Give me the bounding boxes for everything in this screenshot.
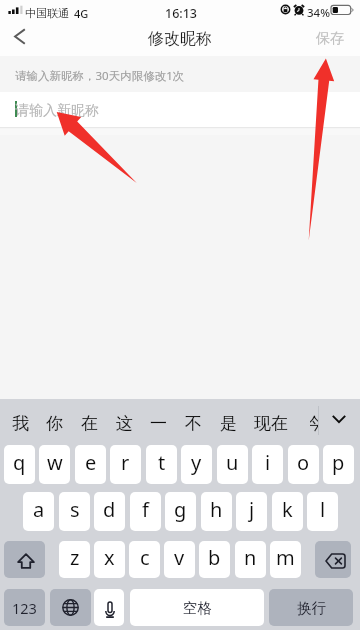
staticText: k	[282, 496, 293, 523]
staticText: 在	[81, 413, 98, 434]
button[interactable]: 换行	[269, 589, 353, 626]
staticText: t	[158, 449, 166, 476]
staticText: 是	[220, 413, 237, 434]
button[interactable]: s	[59, 492, 90, 531]
button[interactable]: 在	[81, 408, 99, 436]
staticText: u	[226, 449, 239, 476]
button[interactable]: 我	[12, 408, 30, 436]
staticText: r	[121, 449, 130, 476]
button[interactable]: h	[201, 492, 232, 531]
staticText: 这	[116, 413, 133, 434]
button[interactable]: 现在	[254, 408, 290, 436]
staticText: a	[33, 496, 45, 523]
staticText: z	[70, 544, 80, 571]
staticText: b	[208, 544, 221, 571]
button[interactable]: 这	[116, 408, 134, 436]
button[interactable]: x	[94, 541, 125, 578]
button[interactable]: a	[23, 492, 54, 531]
staticText: 一	[150, 413, 167, 434]
button[interactable]: t	[146, 445, 177, 484]
button[interactable]: p	[323, 445, 354, 484]
staticText: g	[174, 496, 187, 523]
button[interactable]: q	[4, 445, 35, 484]
staticText: i	[265, 449, 271, 476]
staticText: 今	[310, 413, 314, 434]
staticText: l	[320, 496, 326, 523]
staticText: 中国联通	[25, 6, 69, 20]
button[interactable]: Back	[2, 24, 38, 56]
button[interactable]: u	[217, 445, 248, 484]
button[interactable]: c	[129, 541, 160, 578]
button[interactable]: Shift	[4, 541, 45, 578]
staticText: h	[210, 496, 223, 523]
staticText: 16:13	[165, 5, 198, 22]
button[interactable]: r	[110, 445, 141, 484]
staticText: 修改昵称	[148, 29, 212, 49]
staticText: y	[191, 449, 202, 476]
button[interactable]: 请输入新昵称	[0, 92, 360, 128]
button[interactable]: Voice input	[94, 589, 124, 626]
button[interactable]: e	[75, 445, 106, 484]
staticText: e	[85, 449, 97, 476]
staticText: x	[104, 544, 115, 571]
button[interactable]: o	[288, 445, 319, 484]
button[interactable]: f	[130, 492, 161, 531]
staticText: n	[244, 544, 257, 571]
staticText: 请输入新昵称，30天内限修改1次	[15, 68, 185, 84]
staticText: 请输入新昵称	[15, 102, 99, 120]
button[interactable]: 是	[220, 408, 238, 436]
staticText: o	[297, 449, 310, 476]
button[interactable]: z	[59, 541, 90, 578]
staticText: c	[140, 544, 150, 571]
button[interactable]: 你	[46, 408, 64, 436]
staticText: 换行	[297, 599, 326, 617]
button[interactable]: 保存	[316, 23, 344, 55]
button[interactable]: j	[236, 492, 267, 531]
button[interactable]: 不	[185, 408, 203, 436]
button[interactable]: Switch input language	[50, 589, 91, 626]
button[interactable]: w	[39, 445, 70, 484]
staticText: m	[276, 544, 295, 571]
button[interactable]: 空格	[130, 589, 264, 626]
staticText: 保存	[316, 30, 344, 48]
button[interactable]: Hide keyboard	[324, 399, 354, 439]
button[interactable]: y	[181, 445, 212, 484]
staticText: f	[142, 496, 149, 523]
staticText: 现在	[254, 413, 288, 434]
button[interactable]: v	[164, 541, 195, 578]
staticText: 你	[46, 413, 63, 434]
staticText: v	[174, 544, 185, 571]
button[interactable]: d	[94, 492, 125, 531]
staticText: j	[249, 496, 255, 523]
staticText: 我	[12, 413, 29, 434]
staticText: w	[47, 449, 63, 476]
staticText: d	[103, 496, 116, 523]
button[interactable]: n	[235, 541, 266, 578]
button[interactable]: m	[270, 541, 301, 578]
button[interactable]: l	[307, 492, 338, 531]
staticText: 123	[12, 598, 37, 618]
staticText: p	[332, 449, 345, 476]
staticText: 34%	[307, 5, 330, 21]
staticText: 空格	[183, 599, 212, 617]
button[interactable]: g	[165, 492, 196, 531]
staticText: s	[70, 496, 80, 523]
button[interactable]: b	[199, 541, 230, 578]
button[interactable]: i	[252, 445, 283, 484]
button[interactable]: 123	[4, 589, 45, 626]
button[interactable]: 一	[150, 408, 168, 436]
button[interactable]: k	[272, 492, 303, 531]
button[interactable]: Backspace	[315, 541, 351, 578]
staticText: q	[13, 449, 26, 476]
staticText: 不	[185, 413, 202, 434]
staticText: 4G	[74, 6, 89, 21]
